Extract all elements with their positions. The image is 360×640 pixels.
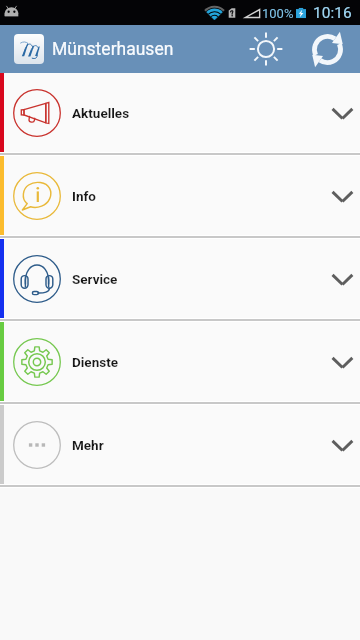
button[interactable]: Service bbox=[0, 239, 360, 318]
staticText: Dienste bbox=[72, 354, 118, 370]
button[interactable]: Münsterhausen logo bbox=[14, 34, 44, 64]
staticText: Mehr bbox=[72, 437, 104, 453]
button[interactable]: Info bbox=[0, 156, 360, 235]
staticText: Aktuelles bbox=[72, 105, 130, 121]
button[interactable]: Aktuelles bbox=[0, 73, 360, 152]
button[interactable]: Refresh bbox=[303, 25, 351, 73]
staticText: Service bbox=[72, 271, 118, 287]
button[interactable]: Brightness bbox=[242, 25, 290, 73]
button[interactable]: Dienste bbox=[0, 322, 360, 401]
staticText: 100% bbox=[262, 6, 294, 21]
staticText: 10:16 bbox=[313, 4, 352, 22]
staticText: Münsterhausen bbox=[52, 39, 174, 60]
staticText: Info bbox=[72, 188, 96, 204]
button[interactable]: Mehr bbox=[0, 405, 360, 484]
